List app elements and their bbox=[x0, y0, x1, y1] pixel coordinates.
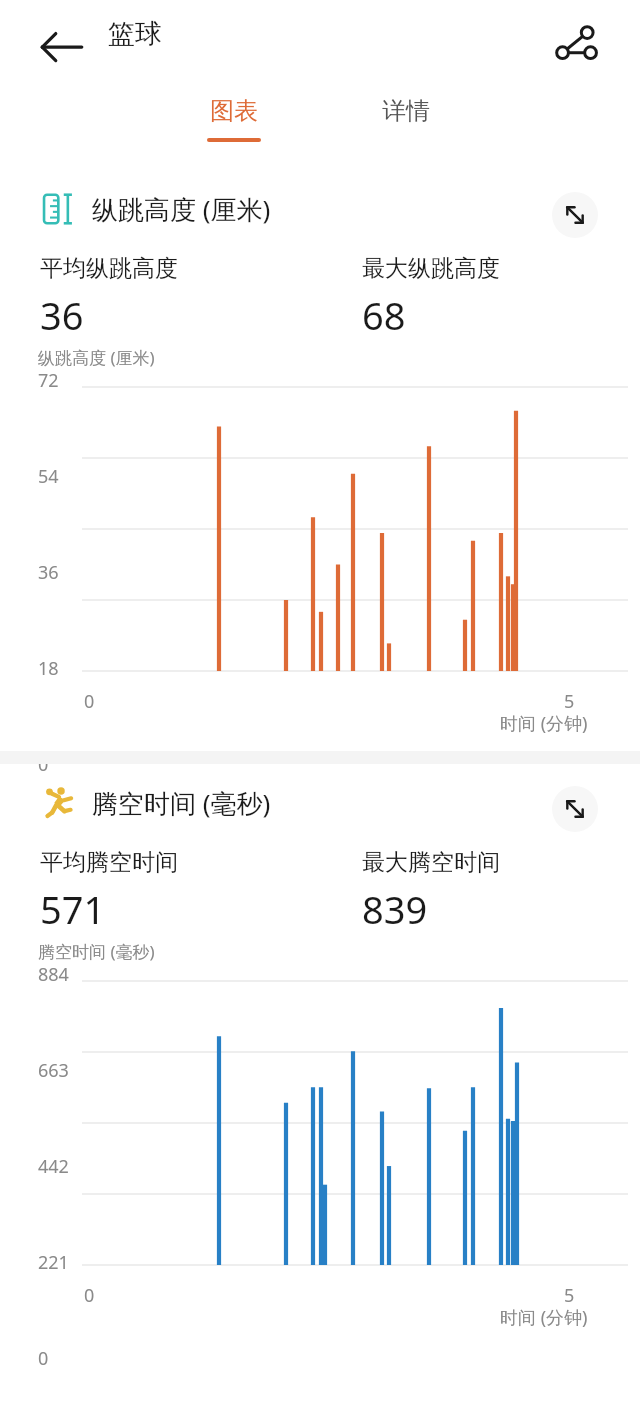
button[interactable]: Share bbox=[548, 18, 604, 74]
staticText: 571 bbox=[40, 883, 106, 935]
button[interactable]: Expand chart bbox=[552, 786, 598, 832]
staticText: 839 bbox=[362, 883, 428, 935]
staticText: 221 bbox=[38, 1250, 69, 1275]
staticText: 纵跳高度 (厘米) bbox=[92, 191, 271, 227]
staticText: 0 bbox=[84, 689, 95, 714]
staticText: 18 bbox=[38, 656, 59, 681]
staticText: 时间 (分钟) bbox=[500, 1305, 588, 1330]
staticText: 最大腾空时间 bbox=[362, 848, 500, 877]
staticText: 5 bbox=[564, 1283, 575, 1308]
staticText: 纵跳高度 (厘米) bbox=[38, 346, 155, 369]
staticText: 68 bbox=[362, 289, 406, 341]
button[interactable]: Back bbox=[36, 20, 88, 72]
staticText: 篮球 bbox=[108, 17, 162, 51]
button[interactable]: Expand chart bbox=[552, 192, 598, 238]
staticText: 时间 (分钟) bbox=[500, 711, 588, 736]
staticText: 442 bbox=[38, 1154, 69, 1179]
button[interactable]: 详情 bbox=[358, 96, 454, 140]
staticText: 884 bbox=[38, 962, 69, 987]
staticText: 72 bbox=[38, 368, 59, 393]
staticText: 平均纵跳高度 bbox=[40, 254, 178, 283]
staticText: 腾空时间 (毫秒) bbox=[92, 785, 271, 821]
staticText: 图表 bbox=[210, 96, 258, 126]
staticText: 0 bbox=[38, 1346, 49, 1371]
staticText: 36 bbox=[38, 560, 59, 585]
staticText: 0 bbox=[38, 752, 49, 777]
staticText: 36 bbox=[40, 289, 84, 341]
button[interactable]: 图表 bbox=[186, 96, 282, 142]
staticText: 54 bbox=[38, 464, 59, 489]
staticText: 0 bbox=[84, 1283, 95, 1308]
staticText: 663 bbox=[38, 1058, 69, 1083]
staticText: 详情 bbox=[382, 96, 430, 126]
staticText: 5 bbox=[564, 689, 575, 714]
staticText: 平均腾空时间 bbox=[40, 848, 178, 877]
staticText: 最大纵跳高度 bbox=[362, 254, 500, 283]
staticText: 腾空时间 (毫秒) bbox=[38, 940, 155, 963]
